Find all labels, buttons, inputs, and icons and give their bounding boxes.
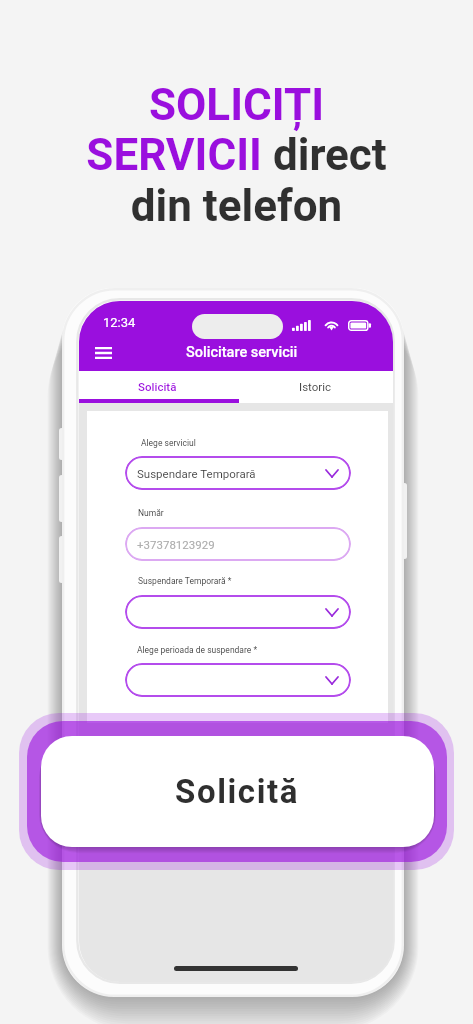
button[interactable] <box>125 663 351 697</box>
staticText: Alege serviciul <box>141 438 196 448</box>
button[interactable]: +37378123929 <box>125 527 351 561</box>
staticText: +37378123929 <box>137 538 215 551</box>
button[interactable]: Istoric <box>236 371 393 403</box>
staticText: Solicită <box>175 772 300 811</box>
button[interactable] <box>125 595 351 629</box>
staticText: Solicitare servicii <box>186 344 298 361</box>
staticText: Număr <box>138 508 164 518</box>
button[interactable]: Open navigation menu <box>83 335 124 371</box>
staticText: Alege perioada de suspendare * <box>137 645 258 655</box>
staticText: Suspendare Temporară * <box>138 576 232 586</box>
button[interactable]: Suspendare Temporară <box>125 456 351 490</box>
button[interactable]: Solicită <box>79 371 236 403</box>
staticText: Istoric <box>299 380 331 393</box>
staticText: Solicită <box>138 380 177 393</box>
staticText: Suspendare Temporară <box>137 467 256 480</box>
staticText: SOLICIȚI SERVICII direct din telefon <box>0 79 473 232</box>
staticText: 12:34 <box>103 315 136 330</box>
button[interactable]: Solicită <box>19 713 454 870</box>
